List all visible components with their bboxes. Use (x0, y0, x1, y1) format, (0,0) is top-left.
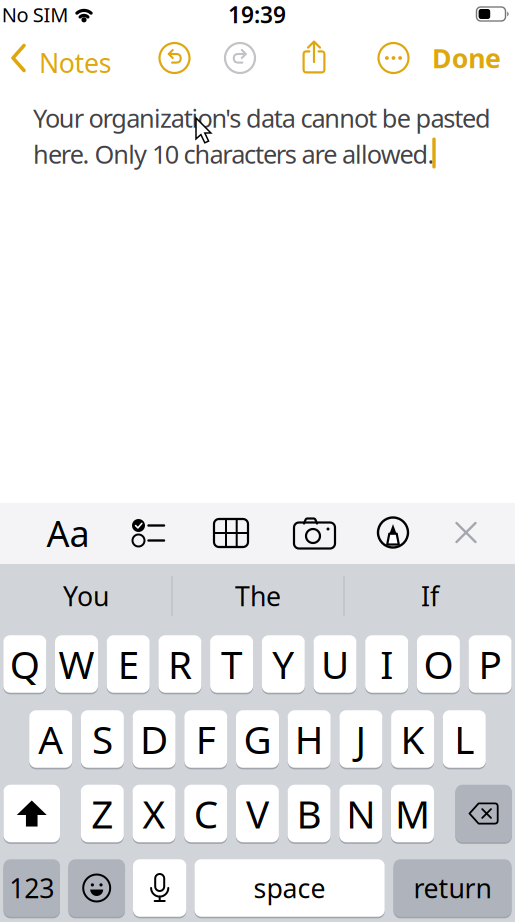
staticText: T (221, 638, 242, 690)
button[interactable]: Done (432, 40, 501, 76)
button[interactable]: H (288, 709, 331, 769)
staticText: C (194, 788, 218, 839)
staticText: A (38, 713, 63, 765)
button[interactable]: C (184, 784, 227, 843)
staticText: No SIM (2, 1, 68, 28)
button[interactable]: return (393, 858, 511, 918)
button[interactable]: space (194, 858, 385, 918)
staticText: R (168, 638, 192, 690)
staticText: J (355, 713, 366, 765)
staticText: return (413, 870, 491, 906)
button[interactable]: Share (301, 40, 327, 74)
button[interactable]: X (132, 784, 175, 843)
button[interactable]: J (339, 709, 382, 769)
button[interactable]: U (313, 634, 356, 694)
button[interactable]: Checklist (131, 518, 165, 548)
staticText: here. Only 10 characters are allowed. (33, 137, 434, 171)
button[interactable]: L (443, 709, 486, 769)
button[interactable]: K (391, 709, 434, 769)
button[interactable]: Y (262, 634, 305, 694)
staticText: K (401, 713, 425, 765)
staticText: Your organization's data cannot be paste… (33, 101, 491, 135)
button[interactable]: Delete (455, 784, 512, 843)
staticText: B (297, 788, 322, 839)
staticText: Y (272, 638, 294, 690)
staticText: 123 (9, 870, 54, 906)
button[interactable]: Z (81, 784, 124, 843)
button[interactable]: Notes (7, 43, 102, 73)
staticText: Q (10, 638, 40, 690)
button[interactable]: Dictate (133, 858, 186, 918)
button[interactable]: M (391, 784, 434, 843)
staticText: L (454, 713, 474, 765)
button[interactable]: B (288, 784, 331, 843)
staticText: X (142, 788, 165, 839)
button[interactable]: Emoji (68, 858, 125, 918)
button[interactable]: R (158, 634, 201, 694)
staticText: V (246, 788, 269, 839)
staticText: 19:39 (228, 0, 286, 29)
button[interactable]: T (210, 634, 253, 694)
staticText: space (254, 870, 326, 906)
button[interactable]: 123 (3, 858, 60, 918)
button[interactable]: W (55, 634, 98, 694)
staticText: Notes (39, 45, 112, 80)
staticText: Aa (46, 509, 89, 557)
staticText: You (63, 578, 109, 614)
button[interactable]: Redo (225, 43, 255, 73)
button[interactable]: Q (3, 634, 46, 694)
button[interactable]: You (2, 574, 170, 618)
staticText: G (243, 713, 271, 765)
button[interactable]: Shift (3, 784, 60, 843)
button[interactable]: F (184, 709, 227, 769)
staticText: H (295, 713, 324, 765)
button[interactable]: D (133, 709, 176, 769)
staticText: W (58, 638, 94, 690)
staticText: P (479, 638, 502, 690)
button[interactable]: G (236, 709, 279, 769)
staticText: O (423, 638, 453, 690)
staticText: E (118, 638, 139, 690)
staticText: If (421, 578, 439, 614)
button[interactable]: N (339, 784, 382, 843)
button[interactable]: V (236, 784, 279, 843)
staticText: U (321, 638, 349, 690)
staticText: I (380, 638, 393, 690)
button[interactable]: More (378, 43, 408, 73)
button[interactable]: O (417, 634, 460, 694)
staticText: S (92, 713, 113, 765)
button[interactable]: P (469, 634, 512, 694)
staticText: Done (432, 40, 501, 76)
staticText: M (395, 788, 430, 839)
staticText: N (346, 788, 375, 839)
button[interactable]: E (107, 634, 150, 694)
button[interactable]: If (346, 574, 514, 618)
button[interactable]: The (174, 574, 342, 618)
button[interactable]: S (81, 709, 124, 769)
button[interactable]: Undo (159, 43, 189, 73)
staticText: Z (91, 788, 113, 839)
button[interactable]: A (29, 709, 72, 769)
button[interactable]: I (365, 634, 408, 694)
button[interactable]: Dismiss keyboard (455, 521, 477, 543)
button[interactable]: Camera (294, 517, 335, 548)
button[interactable]: Format (46, 509, 89, 557)
staticText: The (235, 578, 281, 614)
staticText: D (140, 713, 168, 765)
button[interactable]: Markup (378, 517, 408, 547)
button[interactable]: Table (214, 519, 248, 547)
staticText: F (196, 713, 216, 765)
